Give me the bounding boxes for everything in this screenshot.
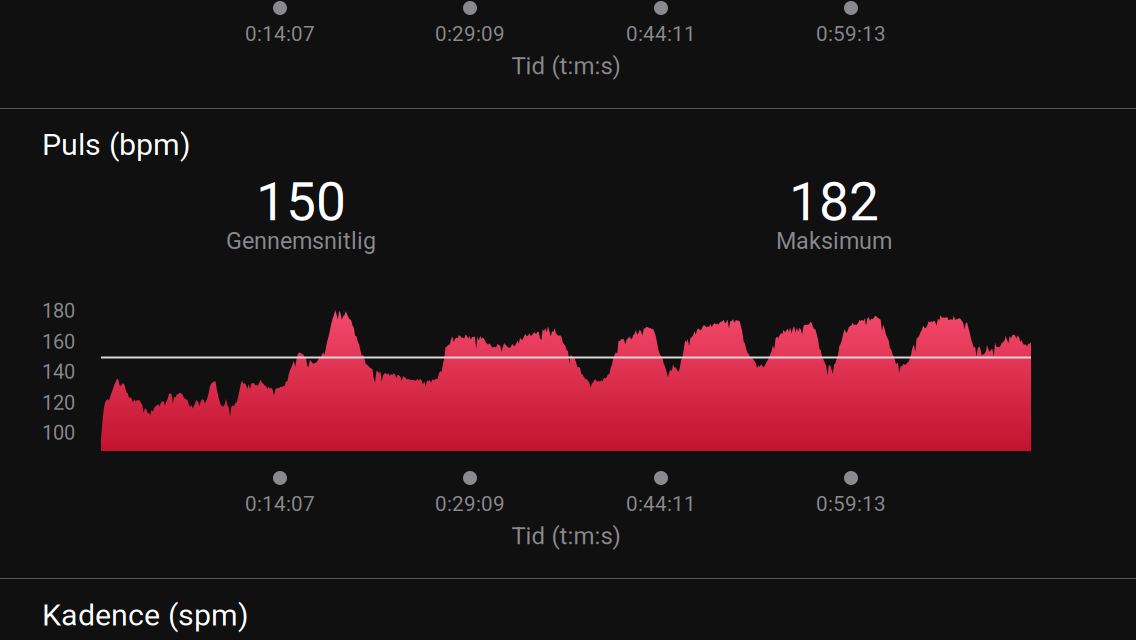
- staticText: 0:29:09: [435, 22, 505, 46]
- staticText: 0:14:07: [245, 22, 315, 46]
- staticText: 160: [42, 330, 75, 354]
- staticText: 150: [256, 171, 346, 233]
- staticText: 182: [789, 171, 879, 233]
- staticText: 0:44:11: [626, 22, 696, 46]
- staticText: 180: [42, 299, 75, 323]
- staticText: Gennemsnitlig: [226, 227, 376, 255]
- staticText: 0:44:11: [626, 492, 696, 516]
- staticText: Maksimum: [776, 227, 892, 255]
- staticText: Tid (t:m:s): [511, 522, 620, 550]
- staticText: 0:29:09: [435, 492, 505, 516]
- staticText: 0:14:07: [245, 492, 315, 516]
- staticText: 0:59:13: [816, 492, 886, 516]
- staticText: 0:59:13: [816, 22, 886, 46]
- staticText: 140: [42, 360, 75, 384]
- staticText: 120: [42, 391, 75, 415]
- staticText: Kadence (spm): [42, 597, 249, 633]
- staticText: Puls (bpm): [42, 127, 191, 162]
- staticText: 100: [42, 421, 75, 445]
- staticText: Tid (t:m:s): [511, 52, 620, 80]
